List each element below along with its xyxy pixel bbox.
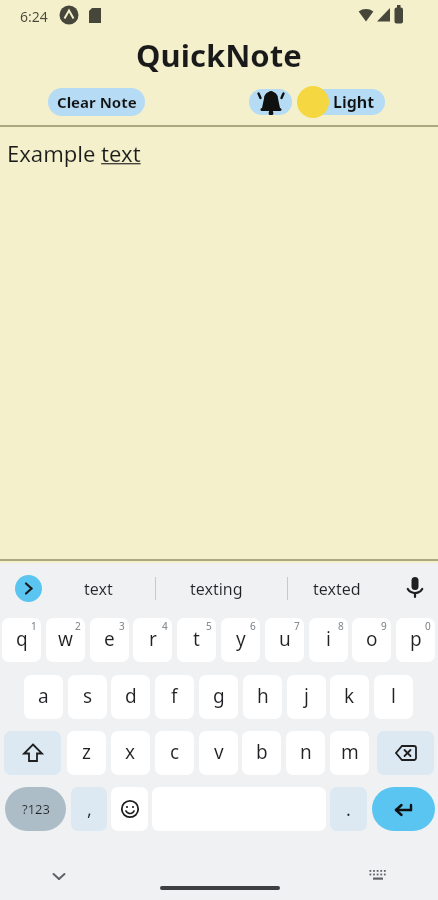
staticText: 9 [381, 619, 387, 633]
staticText: Clear Note [57, 92, 137, 112]
staticText: n [300, 739, 312, 765]
button[interactable]: c [155, 731, 194, 775]
staticText: h [257, 683, 269, 709]
staticText: b [256, 739, 268, 765]
staticText: 6 [250, 619, 256, 633]
button[interactable]: r [133, 618, 172, 662]
button[interactable] [363, 863, 393, 889]
staticText: . [346, 797, 351, 822]
button[interactable]: d [111, 675, 150, 719]
staticText: 7 [294, 619, 300, 633]
button[interactable]: . [330, 787, 367, 831]
staticText: text [84, 578, 113, 600]
staticText: z [82, 739, 91, 765]
staticText: q [16, 626, 28, 652]
button[interactable] [402, 575, 428, 601]
staticText: 8 [338, 619, 344, 633]
button[interactable]: h [243, 675, 282, 719]
staticText: j [304, 683, 309, 709]
staticText: s [83, 683, 93, 709]
button[interactable]: l [374, 675, 413, 719]
staticText: 2 [75, 619, 81, 633]
staticText: 1 [31, 619, 37, 633]
staticText: f [171, 683, 178, 709]
staticText: c [170, 739, 180, 765]
button[interactable]: ?123 [5, 787, 66, 831]
staticText: r [149, 626, 157, 652]
button[interactable]: p [396, 618, 435, 662]
staticText: ?123 [22, 800, 50, 818]
button[interactable]: z [67, 731, 106, 775]
button[interactable]: text [48, 575, 148, 602]
staticText: QuickNote [136, 34, 302, 76]
button[interactable]: u [265, 618, 304, 662]
button[interactable]: b [242, 731, 281, 775]
button[interactable]: f [155, 675, 194, 719]
button[interactable] [249, 89, 292, 115]
button[interactable]: k [330, 675, 369, 719]
button[interactable]: n [286, 731, 325, 775]
staticText: x [125, 739, 136, 765]
staticText: k [344, 683, 355, 709]
button[interactable]: o [352, 618, 391, 662]
staticText: g [213, 683, 225, 709]
button[interactable]: Clear Note [48, 88, 145, 116]
staticText: a [38, 683, 49, 709]
staticText: Example text [7, 138, 141, 168]
button[interactable]: e [90, 618, 129, 662]
button[interactable]: y [221, 618, 260, 662]
staticText: 0 [425, 619, 431, 633]
button[interactable]: Light [312, 89, 385, 115]
button[interactable]: s [68, 675, 107, 719]
button[interactable]: x [111, 731, 150, 775]
button[interactable]: t [177, 618, 216, 662]
staticText: l [391, 683, 396, 709]
button[interactable] [111, 787, 148, 831]
staticText: p [410, 626, 422, 652]
button[interactable]: q [2, 618, 41, 662]
button[interactable]: j [287, 675, 326, 719]
staticText: t [193, 626, 200, 652]
button[interactable]: m [330, 731, 369, 775]
staticText: o [366, 626, 378, 652]
staticText: y [236, 626, 246, 652]
staticText: 5 [206, 619, 212, 633]
staticText: w [58, 626, 73, 652]
staticText: i [326, 626, 331, 652]
staticText: e [104, 626, 115, 652]
button[interactable]: texted [288, 575, 386, 602]
button[interactable]: a [24, 675, 63, 719]
button[interactable] [44, 863, 74, 889]
staticText: Light [333, 91, 375, 113]
button[interactable]: v [199, 731, 238, 775]
staticText: 4 [162, 619, 168, 633]
button[interactable] [372, 787, 435, 831]
button[interactable]: texting [156, 575, 276, 602]
button[interactable]: i [309, 618, 348, 662]
staticText: 3 [119, 619, 125, 633]
staticText: u [279, 626, 291, 652]
button[interactable]: g [199, 675, 238, 719]
staticText: v [214, 739, 224, 765]
staticText: texting [190, 578, 243, 600]
staticText: texted [313, 578, 361, 600]
button[interactable] [377, 731, 434, 775]
button[interactable] [4, 731, 61, 775]
staticText: , [87, 797, 92, 822]
staticText: 6:24 [20, 7, 48, 26]
button[interactable]: , [71, 787, 107, 831]
staticText: d [125, 683, 137, 709]
button[interactable] [15, 575, 42, 602]
button[interactable]: w [46, 618, 85, 662]
staticText: m [341, 739, 359, 765]
